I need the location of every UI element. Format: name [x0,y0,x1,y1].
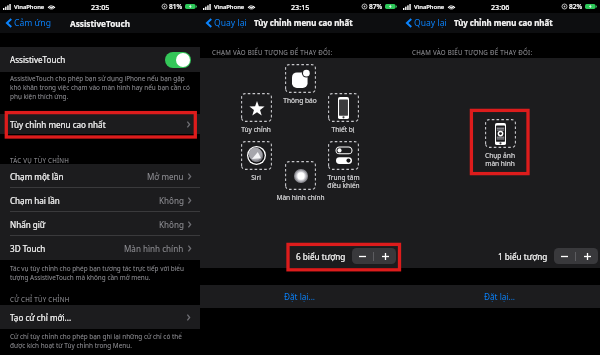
staticText: Tùy chỉnh menu cao nhất [454,18,553,29]
button[interactable]: Chụp ảnh màn hình [475,119,525,168]
staticText: 87% [369,2,383,11]
staticText: Quay lại [414,17,447,29]
staticText: AssistiveTouch [70,18,131,29]
staticText: Tạo cử chỉ mới... [10,312,72,323]
button[interactable]: Đặt lại... [400,285,600,308]
button[interactable]: Đặt lại... [200,285,400,308]
button[interactable]: Nhấn giữ [0,212,200,236]
staticText: 82% [569,2,583,11]
button[interactable]: Chạm hai lần [0,188,200,212]
staticText: AssistiveTouch cho phép bạn sử dụng iPho… [10,74,190,101]
staticText: 1 biểu tượng [498,251,548,262]
staticText: Không [159,219,184,230]
staticText: Tùy chỉnh menu cao nhất [254,18,353,29]
staticText: Chạm hai lần [10,195,60,206]
button[interactable]: Tùy chỉnh [231,93,281,134]
button[interactable]: AssistiveTouch [0,47,200,72]
button[interactable]: Siri [231,141,281,182]
staticText: Thiết bị [331,125,355,134]
staticText: CỬ CHỈ TÙY CHỈNH [10,295,70,303]
staticText: Màn hình chính [124,243,184,254]
button[interactable]: Back [4,14,53,32]
staticText: 23:15 [291,2,310,12]
button[interactable]: Tạo cử chỉ mới... [0,305,200,329]
staticText: 81% [169,2,183,11]
button[interactable]: Màn hình chính [275,161,325,202]
button[interactable]: Thông báo [275,64,325,105]
button[interactable]: Back [404,14,449,32]
staticText: Mở menu [147,171,184,182]
staticText: CHẠM VÀO BIỂU TƯỢNG ĐỂ THAY ĐỔI: [212,48,333,56]
button[interactable]: Trung tâm điều khiển [318,141,368,190]
staticText: Nhấn giữ [10,219,46,230]
staticText: 6 biểu tượng [296,251,346,262]
button[interactable]: Increase [576,248,598,264]
staticText: Đặt lại... [284,291,316,302]
staticText: TÁC VỤ TÙY CHỈNH [10,156,70,164]
button[interactable]: Decrease [554,248,575,264]
staticText: VinaPhone [214,3,245,11]
staticText: Cử chỉ tùy chỉnh cho phép bạn ghi lại nh… [10,332,182,350]
staticText: 23:05 [91,2,110,12]
button[interactable]: 3D Touch [0,236,200,260]
staticText: Tùy chỉnh [241,125,271,134]
staticText: AssistiveTouch [10,54,66,65]
staticText: Không [159,195,184,206]
staticText: 23:06 [491,2,510,12]
staticText: Đặt lại... [484,291,516,302]
staticText: 3D Touch [10,243,46,254]
staticText: Tùy chỉnh menu cao nhất [10,119,106,130]
staticText: CHẠM VÀO BIỂU TƯỢNG ĐỂ THAY ĐỔI: [412,48,533,56]
staticText: Cảm ứng [14,17,51,29]
button[interactable]: Tùy chỉnh menu cao nhất [0,114,200,134]
staticText: Chạm một lần [10,171,64,182]
staticText: Thông báo [283,96,317,105]
button[interactable]: Back [204,14,249,32]
staticText: VinaPhone [14,3,45,11]
staticText: Quay lại [214,17,247,29]
button[interactable]: Increase [374,248,396,264]
button[interactable]: Thiết bị [318,93,368,134]
staticText: Chụp ảnh màn hình [485,151,515,168]
staticText: VinaPhone [414,3,445,11]
staticText: Trung tâm điều khiển [327,173,360,190]
staticText: Siri [251,173,261,182]
staticText: Màn hình chính [276,193,325,202]
button[interactable]: Chạm một lần [0,164,200,188]
button[interactable]: Decrease [352,248,373,264]
staticText: Tác vụ tùy chỉnh cho phép bạn tương tác … [10,264,184,282]
